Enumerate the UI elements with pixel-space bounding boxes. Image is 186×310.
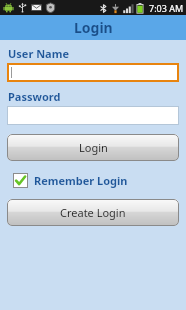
- button[interactable]: Login: [7, 134, 179, 161]
- staticText: User Name: [8, 46, 70, 61]
- button[interactable]: Remember Login checkbox: [13, 173, 128, 188]
- staticText: Login: [79, 140, 108, 155]
- staticText: Password: [8, 89, 61, 104]
- button[interactable]: [7, 63, 179, 82]
- staticText: 7:03 AM: [149, 2, 184, 14]
- staticText: Remember Login: [34, 173, 128, 188]
- staticText: Login: [74, 18, 113, 37]
- button[interactable]: Create Login: [7, 199, 179, 226]
- staticText: Create Login: [60, 205, 126, 220]
- other: Remember Login checkbox: [13, 173, 28, 188]
- button[interactable]: [7, 106, 179, 125]
